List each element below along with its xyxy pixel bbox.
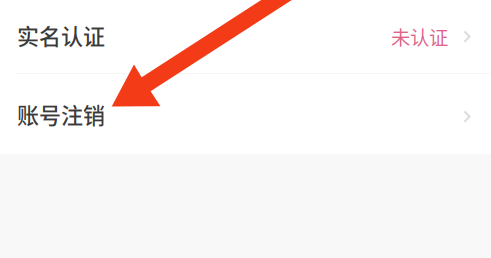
staticText: 实名认证 [17, 19, 105, 51]
button[interactable]: 实名认证, 未认证 [0, 0, 491, 73]
staticText: 未认证 [391, 22, 448, 50]
staticText: 账号注销 [17, 98, 105, 130]
button[interactable]: 账号注销 [0, 74, 491, 154]
